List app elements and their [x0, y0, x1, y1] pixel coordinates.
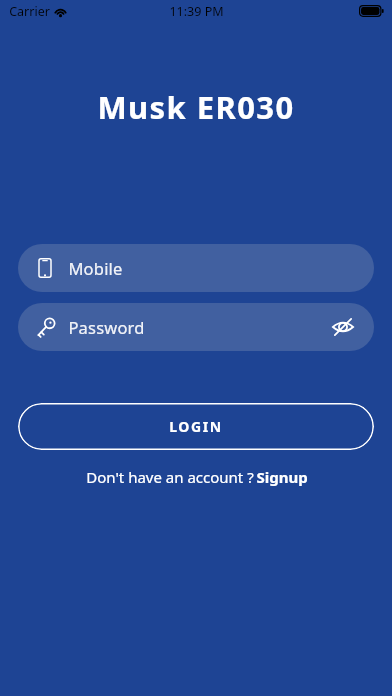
button[interactable]: Don't have an account ? — [0, 465, 392, 489]
button[interactable]: Password — [18, 303, 374, 351]
staticText: LOGIN — [169, 417, 223, 436]
button[interactable]: LOGIN — [18, 403, 374, 450]
staticText: Carrier — [9, 3, 50, 20]
button[interactable]: Mobile — [18, 244, 374, 292]
staticText: 11:39 PM — [169, 3, 224, 20]
staticText: Don't have an account ? — [84, 467, 256, 487]
staticText: Musk ER030 — [97, 86, 295, 128]
button[interactable]: Toggle password visibility — [330, 314, 356, 340]
staticText: Password — [68, 316, 145, 338]
staticText: Signup — [256, 467, 308, 487]
staticText: Mobile — [68, 257, 123, 279]
